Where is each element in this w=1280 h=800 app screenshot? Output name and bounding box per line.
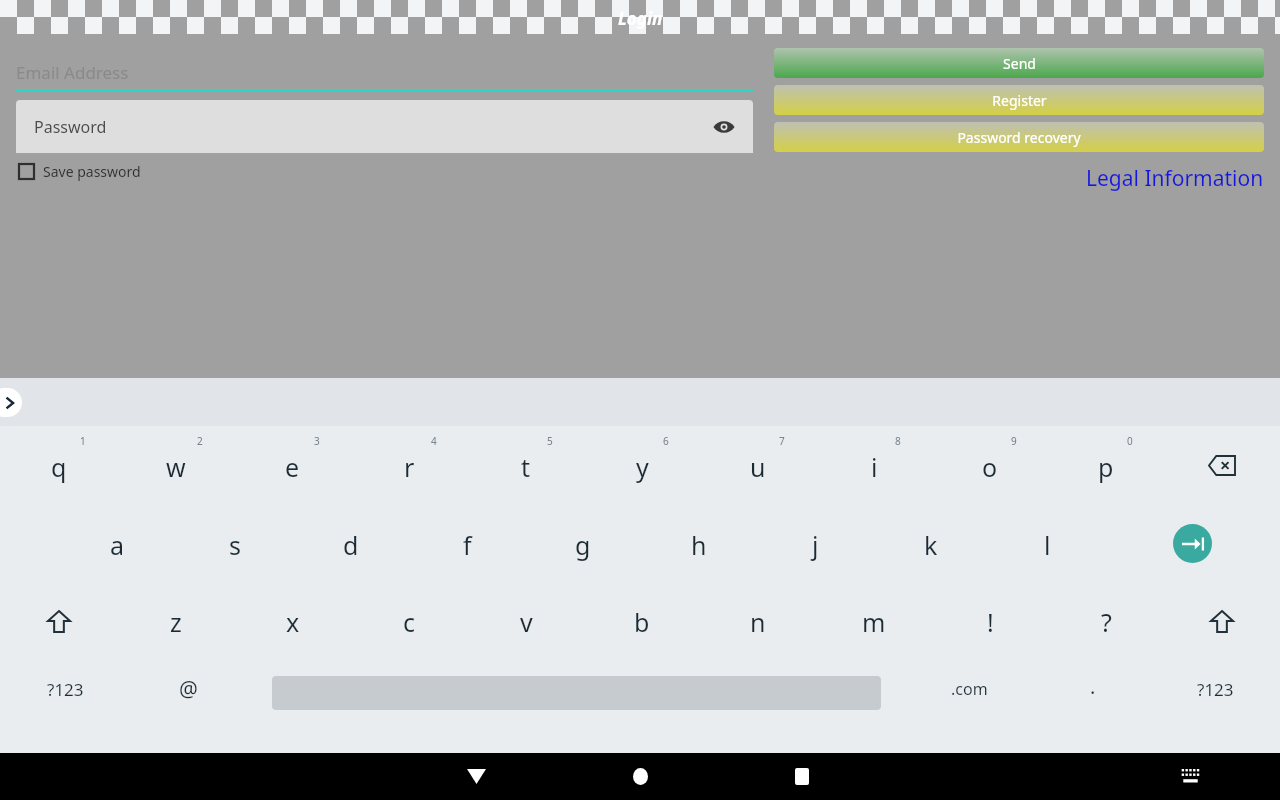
staticText: Password bbox=[34, 116, 107, 138]
staticText: ! bbox=[987, 605, 994, 639]
staticText: b bbox=[634, 605, 650, 639]
button[interactable]: k bbox=[873, 504, 989, 582]
staticText: Legal Information bbox=[1086, 164, 1264, 193]
staticText: a bbox=[110, 528, 125, 562]
staticText: 7 bbox=[779, 434, 785, 448]
staticText: s bbox=[229, 528, 241, 562]
staticText: q bbox=[51, 450, 67, 484]
button[interactable]: f bbox=[409, 504, 525, 582]
button[interactable]: w bbox=[117, 426, 234, 504]
button[interactable]: t bbox=[468, 426, 584, 504]
button[interactable]: .com bbox=[905, 660, 1034, 730]
staticText: o bbox=[982, 450, 998, 484]
staticText: u bbox=[750, 450, 766, 484]
button[interactable]: Switch keyboard bbox=[1166, 753, 1214, 800]
button[interactable]: Password recovery bbox=[774, 122, 1264, 152]
staticText: 9 bbox=[1011, 434, 1017, 448]
staticText: c bbox=[403, 605, 416, 639]
staticText: i bbox=[871, 450, 878, 484]
staticText: 0 bbox=[1127, 434, 1133, 448]
staticText: Register bbox=[992, 91, 1047, 110]
button[interactable]: p bbox=[1048, 426, 1164, 504]
staticText: l bbox=[1044, 528, 1051, 562]
staticText: Email Address bbox=[16, 61, 129, 84]
staticText: 1 bbox=[80, 434, 86, 448]
button[interactable]: s bbox=[176, 504, 293, 582]
button[interactable]: Register bbox=[774, 85, 1264, 115]
button[interactable]: b bbox=[584, 582, 700, 660]
button[interactable]: Show password bbox=[709, 112, 739, 142]
button[interactable]: Shift bbox=[0, 582, 117, 660]
button[interactable]: a bbox=[59, 504, 176, 582]
button[interactable]: u bbox=[700, 426, 816, 504]
staticText: m bbox=[862, 605, 886, 639]
button[interactable]: Recent apps bbox=[778, 753, 826, 800]
staticText: Password recovery bbox=[957, 128, 1081, 147]
staticText: Login bbox=[618, 7, 663, 30]
button[interactable]: Hide keyboard bbox=[452, 753, 500, 800]
staticText: 4 bbox=[431, 434, 437, 448]
staticText: e bbox=[285, 450, 300, 484]
button[interactable]: m bbox=[816, 582, 932, 660]
button[interactable]: ! bbox=[932, 582, 1048, 660]
staticText: t bbox=[521, 450, 531, 484]
staticText: y bbox=[636, 450, 649, 484]
button[interactable]: @ bbox=[130, 660, 247, 730]
button[interactable]: ?123 bbox=[1151, 660, 1280, 730]
staticText: 6 bbox=[663, 434, 669, 448]
button[interactable]: o bbox=[932, 426, 1048, 504]
button[interactable]: n bbox=[700, 582, 816, 660]
staticText: x bbox=[286, 605, 300, 639]
staticText: k bbox=[924, 528, 938, 562]
staticText: d bbox=[343, 528, 359, 562]
button[interactable]: Send bbox=[774, 48, 1264, 78]
button[interactable]: Space bbox=[247, 660, 905, 730]
staticText: w bbox=[166, 450, 186, 484]
button[interactable]: Shift bbox=[1164, 582, 1280, 660]
button[interactable]: Save password bbox=[16, 160, 143, 183]
staticText: r bbox=[404, 450, 415, 484]
staticText: n bbox=[750, 605, 766, 639]
button[interactable]: . bbox=[1034, 660, 1151, 730]
staticText: 3 bbox=[314, 434, 320, 448]
button[interactable]: Expand suggestions bbox=[0, 388, 22, 417]
button[interactable]: Legal Information bbox=[774, 164, 1264, 193]
button[interactable]: Email Address bbox=[16, 53, 753, 91]
staticText: 2 bbox=[197, 434, 203, 448]
staticText: @ bbox=[179, 675, 198, 704]
button[interactable]: d bbox=[293, 504, 409, 582]
staticText: ?123 bbox=[1197, 678, 1234, 701]
button[interactable]: z bbox=[117, 582, 234, 660]
button[interactable]: ? bbox=[1048, 582, 1164, 660]
button[interactable]: c bbox=[351, 582, 468, 660]
staticText: .com bbox=[951, 678, 988, 700]
button[interactable]: g bbox=[525, 504, 641, 582]
button[interactable]: Backspace bbox=[1164, 426, 1280, 504]
button[interactable]: q bbox=[0, 426, 117, 504]
staticText: 5 bbox=[547, 434, 553, 448]
button[interactable]: Next field bbox=[1105, 504, 1280, 582]
button[interactable]: x bbox=[234, 582, 351, 660]
staticText: h bbox=[691, 528, 707, 562]
staticText: g bbox=[575, 528, 591, 562]
staticText: j bbox=[812, 528, 819, 562]
button[interactable]: y bbox=[584, 426, 700, 504]
button[interactable]: l bbox=[989, 504, 1105, 582]
staticText: 8 bbox=[895, 434, 901, 448]
staticText: Send bbox=[1003, 54, 1036, 73]
staticText: p bbox=[1098, 450, 1114, 484]
button[interactable]: Password bbox=[16, 100, 753, 153]
button[interactable]: Home bbox=[616, 753, 664, 800]
button[interactable]: i bbox=[816, 426, 932, 504]
button[interactable]: r bbox=[351, 426, 468, 504]
button[interactable]: h bbox=[641, 504, 757, 582]
staticText: . bbox=[1090, 673, 1096, 700]
staticText: v bbox=[520, 605, 533, 639]
staticText: ?123 bbox=[47, 678, 84, 701]
staticText: Save password bbox=[43, 162, 141, 181]
button[interactable]: ?123 bbox=[0, 660, 130, 730]
staticText: z bbox=[170, 605, 182, 639]
button[interactable]: e bbox=[234, 426, 351, 504]
button[interactable]: v bbox=[468, 582, 584, 660]
button[interactable]: j bbox=[757, 504, 873, 582]
